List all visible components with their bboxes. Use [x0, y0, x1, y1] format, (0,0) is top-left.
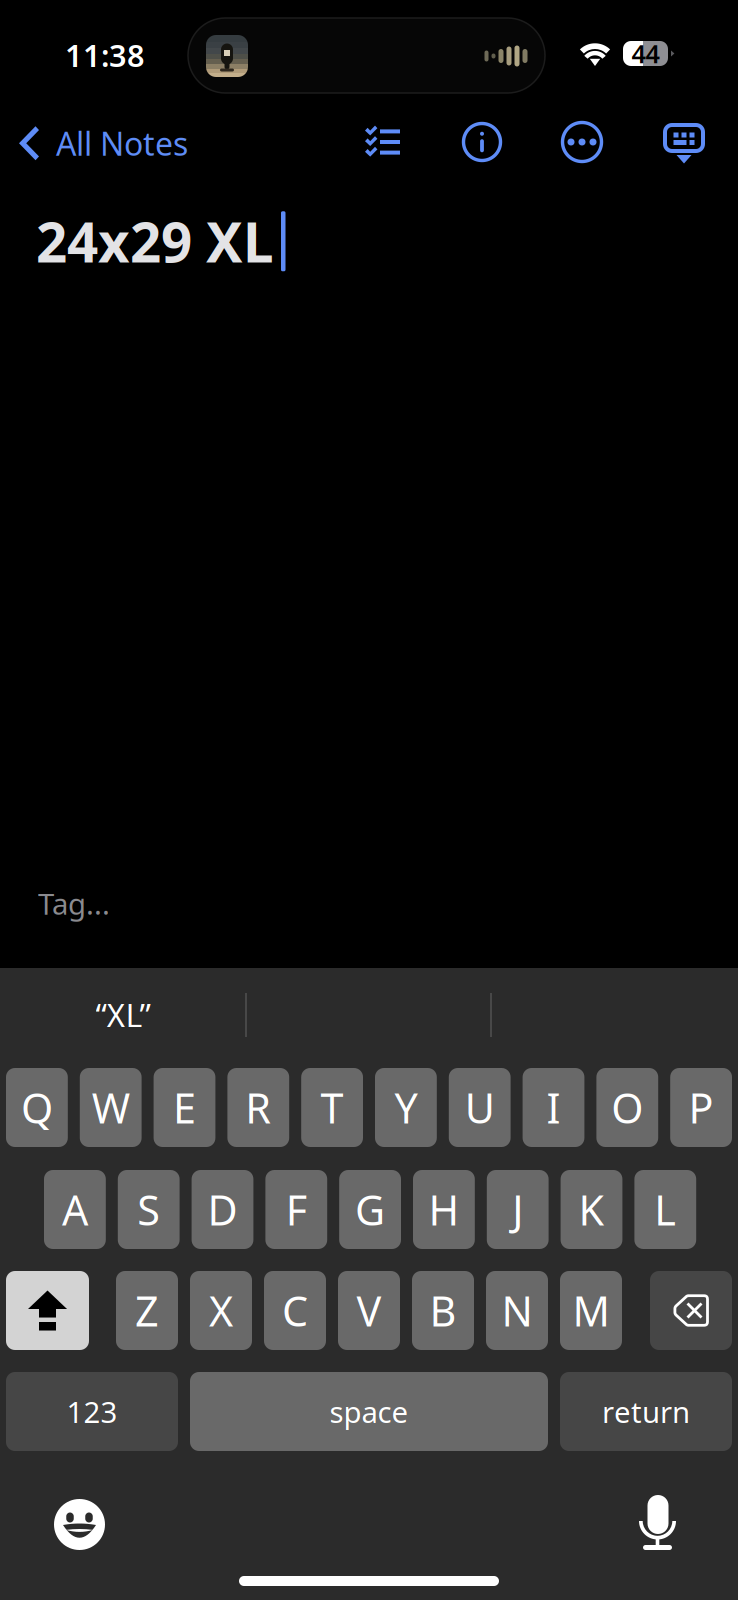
staticText: D: [207, 1182, 237, 1237]
staticText: N: [501, 1283, 532, 1338]
button[interactable]: Q: [6, 1068, 68, 1147]
button[interactable]: K: [561, 1170, 622, 1249]
staticText: 24x29 XL: [36, 205, 274, 278]
button[interactable]: C: [264, 1271, 326, 1350]
button[interactable]: Checklist: [355, 116, 410, 165]
staticText: E: [173, 1080, 196, 1135]
button[interactable]: space: [190, 1372, 548, 1451]
button[interactable]: R: [227, 1068, 289, 1147]
button[interactable]: Emoji keyboard: [54, 1499, 105, 1550]
staticText: O: [611, 1080, 643, 1135]
button[interactable]: D: [192, 1170, 253, 1249]
button[interactable]: “XL”: [0, 968, 246, 1062]
button[interactable]: Note details: [453, 113, 511, 171]
staticText: L: [654, 1182, 676, 1237]
staticText: J: [512, 1182, 523, 1237]
button[interactable]: X: [190, 1271, 252, 1350]
staticText: P: [689, 1080, 714, 1135]
button[interactable]: F: [265, 1170, 327, 1249]
staticText: 123: [66, 1392, 117, 1431]
button[interactable]: J: [487, 1170, 549, 1249]
staticText: H: [428, 1182, 459, 1237]
button[interactable]: 123: [6, 1372, 178, 1451]
button[interactable]: Delete: [650, 1271, 732, 1350]
button[interactable]: All Notes: [0, 108, 202, 178]
staticText: R: [245, 1080, 271, 1135]
staticText: U: [465, 1080, 495, 1135]
staticText: I: [546, 1080, 560, 1135]
staticText: B: [429, 1283, 456, 1338]
staticText: Z: [135, 1283, 159, 1338]
button[interactable]: I: [523, 1068, 584, 1147]
button[interactable]: L: [634, 1170, 696, 1249]
staticText: All Notes: [56, 122, 188, 164]
staticText: “XL”: [95, 994, 150, 1036]
button[interactable]: N: [486, 1271, 548, 1350]
staticText: V: [356, 1283, 381, 1338]
button[interactable]: H: [413, 1170, 475, 1249]
button[interactable]: E: [154, 1068, 215, 1147]
button[interactable]: Y: [375, 1068, 437, 1147]
staticText: G: [355, 1182, 385, 1237]
staticText: Q: [21, 1080, 53, 1135]
button[interactable]: A: [44, 1170, 106, 1249]
button[interactable]: V: [338, 1271, 400, 1350]
button[interactable]: P: [670, 1068, 732, 1147]
button[interactable]: W: [80, 1068, 142, 1147]
button[interactable]: Shift: [6, 1271, 89, 1350]
button[interactable]: Hide keyboard: [657, 117, 711, 171]
staticText: F: [286, 1182, 307, 1237]
staticText: A: [62, 1182, 88, 1237]
staticText: return: [602, 1392, 690, 1431]
staticText: T: [321, 1080, 344, 1135]
staticText: Tag...: [38, 884, 110, 923]
staticText: W: [92, 1080, 130, 1135]
staticText: S: [137, 1182, 160, 1237]
button[interactable]: M: [560, 1271, 622, 1350]
button[interactable]: B: [412, 1271, 474, 1350]
staticText: K: [578, 1182, 604, 1237]
staticText: C: [282, 1283, 308, 1338]
staticText: Y: [394, 1080, 417, 1135]
button[interactable]: return: [560, 1372, 732, 1451]
button[interactable]: G: [339, 1170, 401, 1249]
button[interactable]: O: [596, 1068, 658, 1147]
staticText: 44: [631, 37, 659, 70]
button[interactable]: Z: [116, 1271, 178, 1350]
staticText: X: [209, 1283, 233, 1338]
button[interactable]: U: [449, 1068, 511, 1147]
staticText: M: [572, 1283, 609, 1338]
button[interactable]: More options: [553, 113, 611, 171]
button[interactable]: T: [301, 1068, 363, 1147]
staticText: space: [329, 1392, 408, 1431]
staticText: 11:38: [65, 35, 145, 75]
button[interactable]: S: [118, 1170, 180, 1249]
button[interactable]: Dictate: [639, 1495, 677, 1550]
